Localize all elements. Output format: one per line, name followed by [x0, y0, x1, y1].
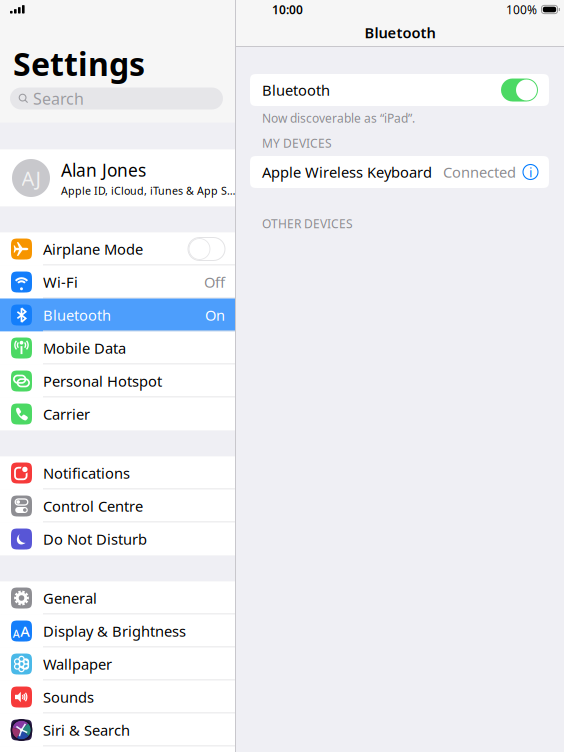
staticText: Airplane Mode	[43, 239, 143, 259]
staticText: Control Centre	[43, 496, 143, 516]
button[interactable]: Sounds	[0, 680, 235, 713]
button[interactable]: Mobile Data	[0, 331, 235, 364]
staticText: Bluetooth	[364, 23, 435, 42]
button[interactable]: Wi-Fi	[0, 265, 235, 298]
staticText: Sounds	[43, 687, 94, 707]
staticText: Wi-Fi	[43, 272, 78, 292]
staticText: AJ	[21, 165, 40, 191]
button[interactable]: Bluetooth on	[501, 78, 538, 101]
button[interactable]: Wallpaper	[0, 647, 235, 680]
staticText: OTHER DEVICES	[262, 215, 353, 231]
staticText: Bluetooth	[262, 80, 330, 100]
staticText: Search	[33, 88, 84, 109]
staticText: Settings	[13, 42, 145, 85]
staticText: Connected	[443, 162, 516, 182]
staticText: A	[20, 621, 30, 641]
staticText: Display & Brightness	[43, 621, 186, 641]
staticText: MY DEVICES	[262, 135, 332, 151]
button[interactable]: Siri & Search	[0, 713, 235, 746]
staticText: 10:00	[272, 1, 303, 17]
button[interactable]: Search	[0, 87, 235, 109]
staticText: Apple ID, iCloud, iTunes & App St…	[61, 183, 235, 198]
staticText: General	[43, 588, 97, 608]
staticText: Now discoverable as “iPad”.	[262, 110, 415, 126]
button[interactable]: General	[0, 581, 235, 614]
staticText: Alan Jones	[61, 158, 146, 181]
staticText: 100%	[506, 1, 537, 17]
staticText: Personal Hotspot	[43, 371, 162, 391]
button[interactable]: Airplane Mode	[0, 232, 235, 265]
button[interactable]: A	[0, 614, 235, 647]
button[interactable]: Do Not Disturb	[0, 522, 235, 555]
staticText: A	[13, 627, 20, 641]
staticText: Apple Wireless Keyboard	[262, 162, 432, 182]
button[interactable]: Notifications	[0, 456, 235, 489]
staticText: i	[529, 163, 532, 181]
staticText: On	[205, 305, 225, 325]
button[interactable]: Bluetooth	[0, 298, 235, 331]
staticText: Mobile Data	[43, 338, 126, 358]
staticText: Carrier	[43, 404, 90, 424]
staticText: Wallpaper	[43, 654, 112, 674]
staticText: Siri & Search	[43, 720, 130, 740]
staticText: Do Not Disturb	[43, 529, 147, 549]
staticText: Off	[204, 272, 225, 292]
button[interactable]: More info about Apple Wireless Keyboard	[523, 164, 538, 179]
staticText: Notifications	[43, 463, 130, 483]
button[interactable]: Control Centre	[0, 489, 235, 522]
button[interactable]: Personal Hotspot	[0, 364, 235, 397]
button[interactable]: AJ	[0, 149, 235, 206]
button[interactable]: Apple Wireless Keyboard	[250, 156, 549, 188]
button[interactable]: Carrier	[0, 397, 235, 430]
staticText: Bluetooth	[43, 305, 111, 325]
